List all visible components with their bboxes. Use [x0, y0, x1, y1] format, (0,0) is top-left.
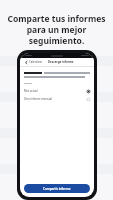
button[interactable]: Compartir informe [24, 184, 90, 193]
staticText: Otro informe mensual [24, 97, 53, 101]
button[interactable]: Otro informe mensual [24, 95, 90, 103]
staticText: Mes actual [24, 89, 38, 93]
staticText: Comparte tus informes para un mejor segu… [6, 13, 107, 46]
staticText: Descarga informe [48, 60, 74, 64]
button[interactable]: Mes actual [24, 87, 90, 95]
button[interactable]: Back [23, 59, 29, 65]
staticText: Calendario [29, 60, 43, 64]
staticText: Compartir informe [43, 187, 71, 191]
